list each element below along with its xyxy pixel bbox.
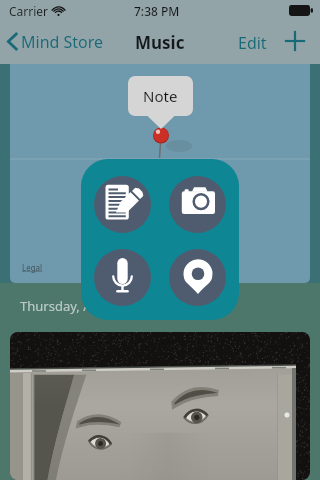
- button[interactable]: Record audio: [94, 249, 151, 306]
- staticText: Carrier: [9, 3, 49, 19]
- button[interactable]: Camera: [169, 176, 226, 233]
- button[interactable]: Location: [169, 249, 226, 306]
- staticText: 7:38 PM: [134, 3, 180, 19]
- staticText: Mind Store: [21, 31, 104, 53]
- button[interactable]: Edit: [238, 32, 267, 54]
- staticText: Music: [135, 31, 185, 54]
- staticText: Thursday, April 17, 2014 7:38 PM: [20, 297, 219, 315]
- button[interactable]: Add: [284, 30, 306, 52]
- staticText: Legal: [22, 262, 43, 273]
- button[interactable]: Note: [128, 76, 193, 116]
- staticText: Note: [143, 86, 178, 106]
- button[interactable]: New note: [94, 176, 151, 233]
- button[interactable]: Mind Store: [5, 30, 104, 53]
